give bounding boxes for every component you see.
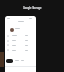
- staticText: Google Storage: [23, 6, 42, 9]
